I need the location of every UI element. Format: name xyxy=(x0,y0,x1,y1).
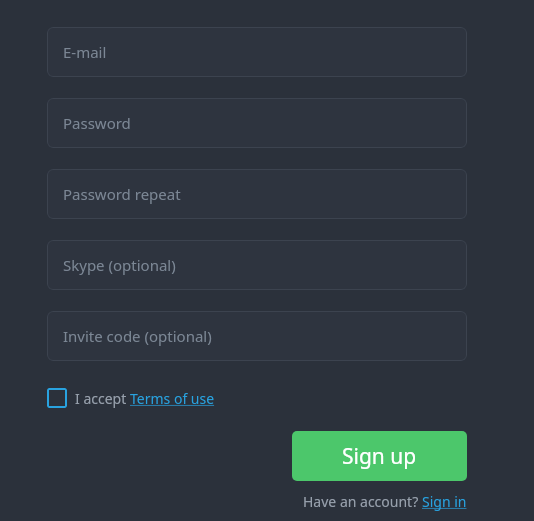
button[interactable]: E-mail xyxy=(47,27,467,77)
button[interactable]: Sign up xyxy=(292,431,467,481)
staticText: Sign in xyxy=(422,492,467,511)
staticText: Password repeat xyxy=(63,184,181,204)
staticText: Terms of use xyxy=(130,389,215,408)
button[interactable]: Sign in xyxy=(422,492,467,511)
staticText: Password xyxy=(63,113,131,133)
staticText: E-mail xyxy=(63,42,107,62)
staticText: I accept xyxy=(75,389,130,408)
staticText: Invite code (optional) xyxy=(63,326,212,346)
button[interactable]: Terms of use xyxy=(130,389,215,408)
staticText: Sign up xyxy=(342,442,417,471)
staticText: Skype (optional) xyxy=(63,255,176,275)
staticText: Have an account? xyxy=(303,492,422,511)
button[interactable]: Password repeat xyxy=(47,169,467,219)
button[interactable]: Accept terms checkbox xyxy=(47,388,67,408)
button[interactable]: Password xyxy=(47,98,467,148)
button[interactable]: Skype (optional) xyxy=(47,240,467,290)
button[interactable]: Invite code (optional) xyxy=(47,311,467,361)
